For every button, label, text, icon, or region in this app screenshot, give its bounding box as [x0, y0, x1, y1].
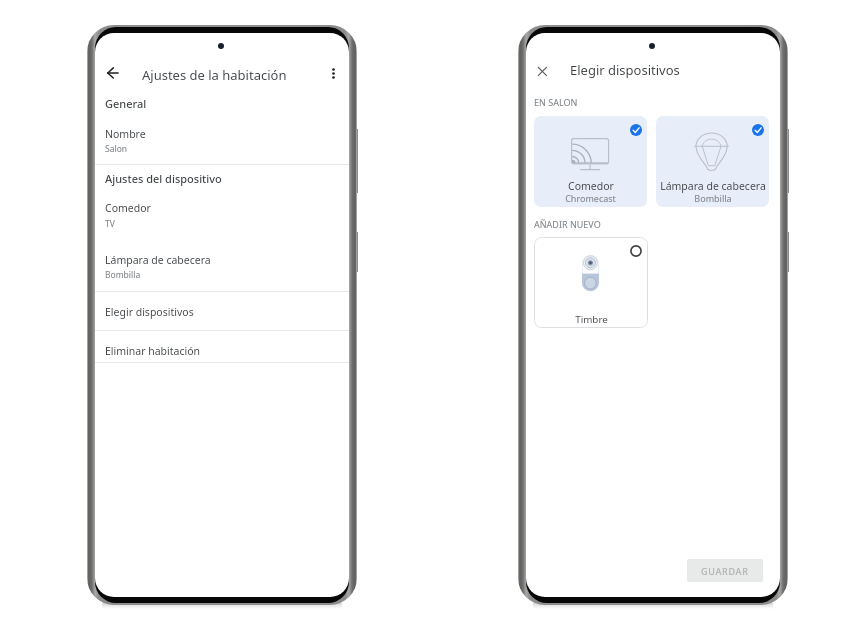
staticText: Ajustes del dispositivo [105, 171, 222, 186]
staticText: EN SALON [534, 96, 578, 108]
staticText: Lámpara de cabecera [105, 253, 211, 267]
staticText: Bombilla [694, 192, 732, 204]
button[interactable] [95, 332, 349, 362]
staticText: Ajustes de la habitación [142, 66, 287, 84]
button[interactable] [95, 117, 349, 149]
staticText: Bombilla [105, 269, 141, 281]
staticText: TV [105, 218, 115, 230]
button[interactable]: Close [530, 57, 554, 85]
staticText: Nombre [105, 127, 146, 141]
staticText: General [105, 96, 147, 111]
button[interactable] [95, 243, 349, 275]
staticText: Timbre [575, 313, 608, 326]
staticText: Elegir dispositivos [105, 305, 194, 319]
staticText: Chromecast [565, 192, 616, 204]
button[interactable] [95, 192, 349, 224]
staticText: Elegir dispositivos [570, 61, 680, 79]
staticText: GUARDAR [701, 565, 749, 577]
button[interactable] [95, 293, 349, 323]
button[interactable]: Comedor [534, 116, 647, 207]
staticText: Comedor [568, 179, 614, 193]
button[interactable]: Lámpara de cabecera [656, 116, 769, 207]
button[interactable]: GUARDAR [687, 559, 763, 582]
staticText: Comedor [105, 201, 151, 215]
staticText: Salon [105, 143, 128, 155]
button[interactable]: Back [100, 59, 126, 87]
button[interactable]: More options [321, 59, 345, 87]
staticText: Eliminar habitación [105, 344, 201, 358]
staticText: AÑADIR NUEVO [534, 218, 601, 230]
staticText: Lámpara de cabecera [660, 179, 766, 193]
button[interactable]: Timbre [534, 237, 648, 328]
